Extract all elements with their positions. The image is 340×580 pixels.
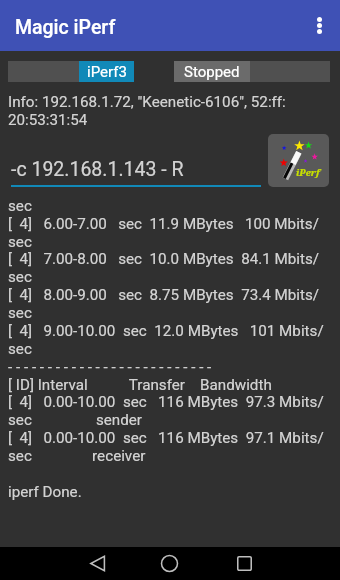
staticText: 20:53:31:54	[8, 111, 88, 129]
button[interactable]: Home	[147, 548, 192, 579]
staticText: [ 4] 0.00-10.00 sec 116 MBytes 97.1 Mbit…	[8, 429, 324, 447]
staticText: sec	[8, 304, 32, 322]
button[interactable]: Stopped	[174, 61, 330, 82]
staticText: [ ID] Interval Transfer Bandwidth	[8, 376, 272, 394]
staticText: Info: 192.168.1.72, "Keenetic-6106", 52:…	[8, 93, 286, 111]
staticText: sec	[8, 233, 32, 251]
button[interactable]: iPerf3	[8, 61, 134, 82]
staticText: sec	[8, 268, 32, 286]
button[interactable]: Recent apps	[222, 548, 267, 579]
staticText: - - - - - - - - - - - - - - - - - - - - …	[8, 358, 216, 376]
staticText: iPerf3	[87, 63, 127, 81]
staticText: [ 4] 6.00-7.00 sec 11.9 MBytes 100 Mbits…	[8, 215, 319, 233]
staticText: Stopped	[184, 63, 240, 81]
button[interactable]: More options	[301, 7, 337, 43]
staticText: [ 4] 9.00-10.00 sec 12.0 MBytes 101 Mbit…	[8, 322, 324, 340]
staticText: [ 4] 7.00-8.00 sec 10.0 MBytes 84.1 Mbit…	[8, 250, 320, 268]
staticText: iperf Done.	[8, 483, 82, 501]
button[interactable]: Back	[75, 548, 120, 579]
staticText: sec	[8, 197, 32, 215]
staticText: -c 192.168.1.143 - R	[11, 158, 184, 181]
staticText: Magic iPerf	[15, 16, 116, 39]
staticText: sec	[8, 340, 32, 358]
staticText: sec sender	[8, 411, 142, 429]
staticText: [ 4] 0.00-10.00 sec 116 MBytes 97.3 Mbit…	[8, 393, 324, 411]
button[interactable]: iPerf logo	[268, 134, 329, 187]
staticText: iPerf	[296, 166, 320, 179]
staticText: [ 4] 8.00-9.00 sec 8.75 MBytes 73.4 Mbit…	[8, 286, 320, 304]
staticText: sec receiver	[8, 447, 146, 465]
